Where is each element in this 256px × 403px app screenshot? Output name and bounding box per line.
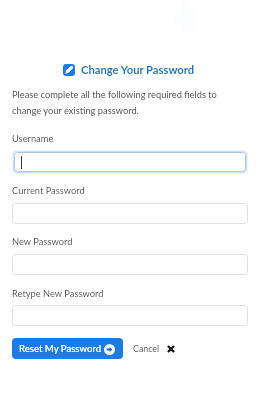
button[interactable]: [12, 305, 248, 326]
other: Cancel: [167, 345, 175, 353]
other: Reset My Password: [104, 344, 115, 355]
staticText: Retype New Password: [12, 288, 104, 299]
staticText: Username: [12, 133, 54, 144]
button[interactable]: Reset My Password: [12, 338, 123, 359]
button[interactable]: Cancel: [133, 339, 175, 358]
staticText: Please complete all the following requir…: [12, 89, 248, 116]
staticText: Cancel: [133, 343, 159, 354]
staticText: Current Password: [12, 185, 85, 196]
staticText: Reset My Password: [19, 343, 102, 355]
staticText: Change Your Password: [81, 63, 195, 76]
button[interactable]: [14, 152, 246, 172]
staticText: New Password: [12, 236, 73, 247]
button[interactable]: [12, 254, 248, 275]
button[interactable]: [12, 203, 248, 224]
